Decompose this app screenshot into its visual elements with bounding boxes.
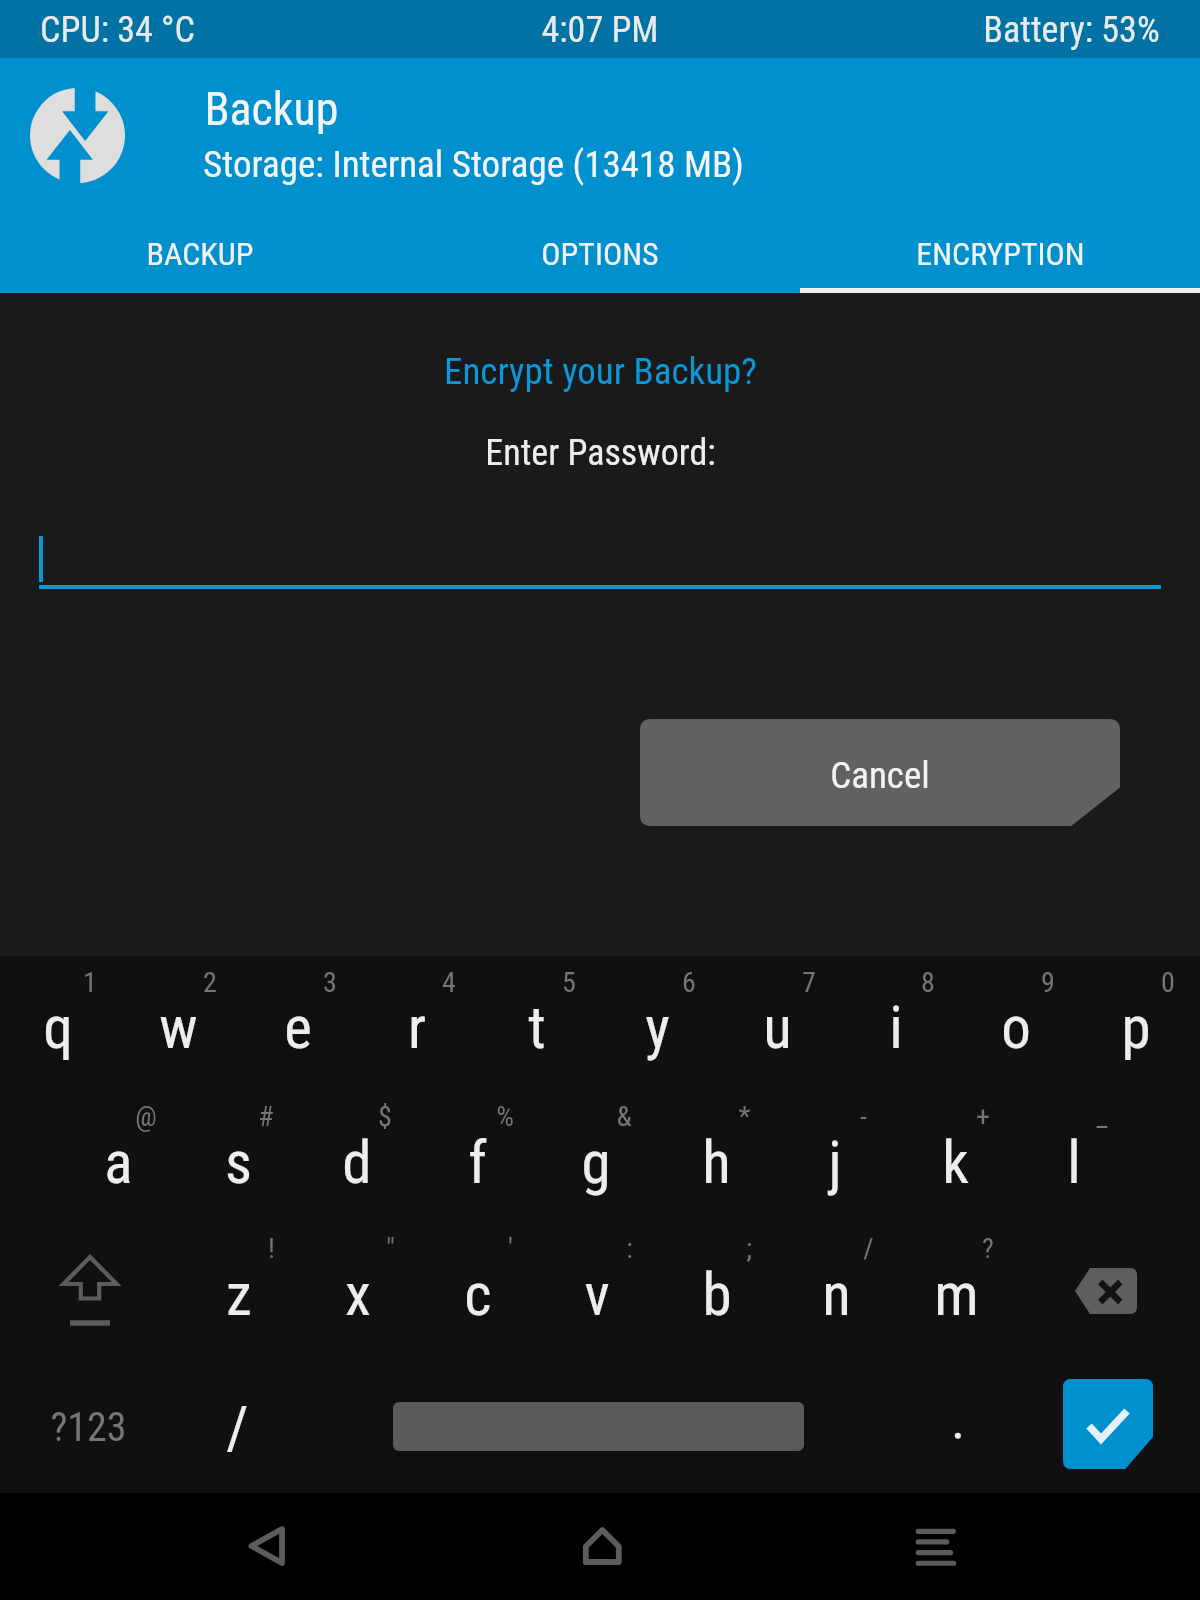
staticText: OPTIONS <box>541 235 659 273</box>
staticText: ; <box>746 1232 752 1265</box>
staticText: " <box>386 1232 395 1265</box>
button[interactable]: Back <box>167 1493 367 1600</box>
button[interactable]: ! <box>179 1223 299 1357</box>
staticText: ? <box>982 1232 994 1265</box>
staticText: m <box>934 1260 979 1329</box>
button[interactable]: 4 <box>357 955 477 1089</box>
staticText: h <box>702 1128 731 1197</box>
button[interactable]: BACKUP <box>0 213 400 293</box>
button[interactable]: Enter <box>1021 1357 1200 1490</box>
staticText: 7 <box>802 966 816 999</box>
staticText: l <box>1067 1128 1081 1197</box>
button[interactable]: + <box>895 1089 1015 1223</box>
button[interactable]: / <box>179 1357 298 1490</box>
button[interactable]: " <box>298 1223 418 1357</box>
button[interactable]: / <box>776 1223 896 1357</box>
staticText: j <box>828 1128 842 1197</box>
staticText: i <box>889 993 903 1062</box>
other: TWRP <box>30 88 125 183</box>
button[interactable]: # <box>178 1089 298 1223</box>
staticText: _ <box>1096 1100 1108 1133</box>
button[interactable]: Menu <box>833 1493 1033 1600</box>
button[interactable]: - <box>775 1089 895 1223</box>
staticText: 4 <box>442 966 456 999</box>
staticText: g <box>581 1128 611 1197</box>
staticText: Battery: 53% <box>983 9 1160 51</box>
staticText: z <box>226 1260 252 1329</box>
button[interactable]: ?123 <box>0 1357 179 1490</box>
staticText: a <box>104 1128 133 1197</box>
staticText: Backup <box>204 82 339 136</box>
button[interactable]: . <box>898 1357 1021 1490</box>
button[interactable]: 1 <box>0 955 118 1089</box>
staticText: ?123 <box>50 1404 127 1451</box>
staticText: + <box>976 1100 990 1133</box>
button[interactable]: 5 <box>477 955 597 1089</box>
staticText: 9 <box>1041 966 1055 999</box>
button[interactable]: Backspace <box>1021 1223 1200 1357</box>
button[interactable]: 6 <box>597 955 717 1089</box>
button[interactable]: Home <box>500 1493 700 1600</box>
staticText: ENCRYPTION <box>916 235 1085 273</box>
staticText: Enter Password: <box>485 432 716 474</box>
button[interactable]: ' <box>418 1223 538 1357</box>
staticText: 3 <box>323 966 337 999</box>
button[interactable]: : <box>537 1223 657 1357</box>
button[interactable]: ENCRYPTION <box>800 213 1200 293</box>
staticText: / <box>863 1232 874 1265</box>
staticText: q <box>43 993 73 1062</box>
staticText: $ <box>378 1100 392 1133</box>
staticText: y <box>645 993 670 1062</box>
staticText: 2 <box>203 966 217 999</box>
staticText: b <box>702 1260 732 1329</box>
button[interactable]: 8 <box>836 955 956 1089</box>
staticText: - <box>860 1100 867 1133</box>
button[interactable]: 3 <box>238 955 358 1089</box>
staticText: % <box>496 1100 514 1133</box>
staticText: 0 <box>1161 966 1175 999</box>
staticText: d <box>342 1128 372 1197</box>
staticText: s <box>225 1128 252 1197</box>
staticText: 1 <box>83 966 97 999</box>
button[interactable]: 7 <box>717 955 837 1089</box>
staticText: & <box>616 1100 632 1133</box>
button[interactable]: & <box>536 1089 656 1223</box>
staticText: ' <box>508 1232 513 1265</box>
button[interactable]: ; <box>657 1223 777 1357</box>
staticText: ! <box>268 1232 275 1265</box>
button[interactable]: Cancel <box>640 719 1120 826</box>
button[interactable]: 9 <box>956 955 1076 1089</box>
button[interactable]: @ <box>58 1089 178 1223</box>
staticText: x <box>345 1260 371 1329</box>
staticText: 6 <box>682 966 696 999</box>
staticText: 8 <box>921 966 935 999</box>
staticText: r <box>408 993 426 1062</box>
button[interactable]: Space <box>298 1357 898 1490</box>
staticText: / <box>226 1392 249 1462</box>
staticText: v <box>584 1260 610 1329</box>
staticText: f <box>468 1128 487 1197</box>
staticText: Encrypt your Backup? <box>444 350 757 393</box>
button[interactable]: 0 <box>1076 955 1196 1089</box>
staticText: : <box>626 1232 633 1265</box>
staticText: 4:07 PM <box>541 9 659 51</box>
staticText: 5 <box>562 966 576 999</box>
button[interactable]: $ <box>297 1089 417 1223</box>
staticText: k <box>942 1128 969 1197</box>
button[interactable]: % <box>417 1089 537 1223</box>
button[interactable]: OPTIONS <box>400 213 800 293</box>
button[interactable]: 2 <box>118 955 238 1089</box>
staticText: w <box>159 993 198 1062</box>
button[interactable]: _ <box>1014 1089 1134 1223</box>
button[interactable]: ? <box>896 1223 1016 1357</box>
staticText: e <box>284 993 312 1062</box>
staticText: * <box>738 1100 751 1133</box>
staticText: BACKUP <box>146 235 254 273</box>
staticText: c <box>464 1260 492 1329</box>
staticText: n <box>822 1260 851 1329</box>
staticText: Cancel <box>830 754 930 797</box>
staticText: @ <box>135 1100 157 1133</box>
button[interactable]: * <box>656 1089 776 1223</box>
staticText: t <box>528 993 546 1062</box>
button[interactable]: Shift <box>0 1223 179 1357</box>
